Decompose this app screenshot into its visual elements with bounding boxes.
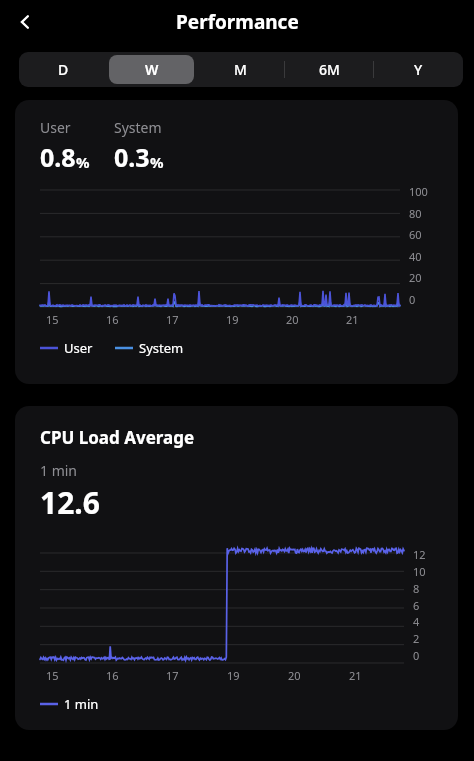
button[interactable]: User	[40, 339, 93, 357]
button[interactable]: System	[115, 339, 184, 357]
staticText: 20	[286, 312, 299, 327]
staticText: 60	[409, 227, 422, 242]
staticText: 12.6	[40, 482, 100, 523]
staticText: %	[76, 152, 90, 172]
staticText: 0.8	[40, 140, 76, 174]
staticText: User	[40, 118, 71, 137]
staticText: Y	[414, 60, 423, 79]
staticText: 6	[413, 598, 420, 613]
button[interactable]: CPU Load Average	[15, 406, 458, 730]
button[interactable]: W	[109, 55, 194, 84]
staticText: 8	[413, 581, 420, 596]
staticText: System	[139, 339, 184, 357]
staticText: 0	[409, 292, 416, 307]
button[interactable]: Back	[8, 5, 42, 39]
staticText: 4	[413, 614, 420, 629]
button[interactable]: 1 min	[40, 695, 99, 713]
staticText: D	[58, 60, 69, 79]
staticText: 21	[349, 668, 362, 683]
button[interactable]: M	[198, 55, 283, 84]
button[interactable]: User	[15, 100, 458, 384]
staticText: 21	[346, 312, 359, 327]
staticText: 10	[413, 564, 426, 579]
staticText: 15	[46, 312, 59, 327]
staticText: 20	[288, 668, 301, 683]
staticText: CPU Load Average	[40, 426, 195, 449]
staticText: 100	[409, 184, 428, 199]
staticText: W	[145, 60, 159, 79]
button[interactable]: Y	[376, 55, 461, 84]
staticText: M	[234, 60, 247, 79]
staticText: 0.3	[114, 140, 150, 174]
button[interactable]: 6M	[287, 55, 372, 84]
staticText: 16	[106, 668, 119, 683]
staticText: 80	[409, 206, 422, 221]
staticText: System	[114, 118, 162, 137]
staticText: 19	[226, 312, 239, 327]
button[interactable]: D	[21, 55, 105, 84]
staticText: 16	[106, 312, 119, 327]
staticText: 2	[413, 631, 420, 646]
staticText: 15	[46, 668, 59, 683]
staticText: User	[64, 339, 93, 357]
staticText: %	[150, 152, 164, 172]
staticText: 17	[166, 668, 179, 683]
staticText: 17	[166, 312, 179, 327]
staticText: 20	[409, 270, 422, 285]
staticText: 40	[409, 249, 422, 264]
staticText: 12	[413, 547, 426, 562]
staticText: Performance	[176, 9, 299, 35]
staticText: 0	[413, 648, 420, 663]
staticText: 19	[227, 668, 240, 683]
staticText: 1 min	[64, 695, 99, 713]
staticText: 6M	[319, 60, 340, 79]
staticText: 1 min	[40, 461, 78, 480]
